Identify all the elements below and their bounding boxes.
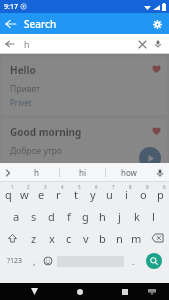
staticText: x <box>49 231 55 246</box>
button[interactable]: Clear <box>134 36 150 52</box>
button[interactable]: Settings <box>148 15 166 33</box>
button[interactable]: Recents <box>111 283 138 300</box>
button[interactable]: g <box>77 205 94 227</box>
staticText: t <box>74 187 78 202</box>
staticText: h <box>34 167 39 178</box>
button[interactable]: w <box>16 183 33 205</box>
button[interactable]: Good morning <box>2 119 167 163</box>
button[interactable]: j <box>111 205 128 227</box>
button[interactable]: y <box>84 183 101 205</box>
button[interactable]: u <box>101 183 118 205</box>
staticText: 9:17 <box>4 2 18 12</box>
staticText: y <box>90 187 96 202</box>
staticText: 2 <box>27 184 30 190</box>
staticText: f <box>67 209 71 224</box>
staticText: d <box>48 209 55 224</box>
button[interactable]: Voice search <box>150 36 166 52</box>
button[interactable]: d <box>43 205 60 227</box>
button[interactable]: x <box>43 227 60 249</box>
button[interactable]: q <box>0 183 16 205</box>
button[interactable]: b <box>94 227 111 249</box>
button[interactable]: i <box>118 183 135 205</box>
button[interactable]: ?123 <box>2 249 28 273</box>
button[interactable]: Hide keyboard <box>138 283 165 300</box>
button[interactable]: p <box>152 183 169 205</box>
button[interactable]: z <box>25 227 43 249</box>
staticText: h <box>24 38 30 50</box>
button[interactable]: Back <box>21 283 48 300</box>
button[interactable]: hi <box>60 163 105 182</box>
button[interactable]: r <box>50 183 67 205</box>
staticText: Доброе утро <box>10 145 62 156</box>
staticText: i <box>125 187 128 202</box>
staticText: 9 <box>146 184 149 190</box>
staticText: 6 <box>95 184 98 190</box>
button[interactable]: Home <box>66 283 93 300</box>
button[interactable]: Hello <box>2 57 167 115</box>
staticText: Privet <box>10 97 32 108</box>
staticText: hi <box>79 167 87 178</box>
staticText: 3 <box>44 184 47 190</box>
staticText: r <box>56 187 61 202</box>
staticText: n <box>116 231 123 246</box>
button[interactable]: Period <box>126 249 140 273</box>
staticText: v <box>83 231 89 246</box>
staticText: Hello <box>10 63 36 77</box>
button[interactable]: Play <box>139 147 161 163</box>
button[interactable]: n <box>111 227 128 249</box>
button[interactable]: o <box>135 183 152 205</box>
staticText: . <box>132 255 135 267</box>
staticText: 7 <box>112 184 115 190</box>
staticText: ?123 <box>7 256 23 266</box>
button[interactable]: Emoji <box>40 249 55 273</box>
staticText: h <box>99 209 106 224</box>
staticText: u <box>106 187 113 202</box>
staticText: j <box>118 209 121 224</box>
button[interactable]: Back <box>2 36 18 52</box>
button[interactable]: Back <box>0 34 169 54</box>
button[interactable]: a <box>7 205 25 227</box>
button[interactable]: t <box>67 183 84 205</box>
button[interactable]: f <box>60 205 77 227</box>
button[interactable]: Backspace <box>145 227 169 249</box>
button[interactable]: c <box>60 227 77 249</box>
button[interactable]: h <box>14 163 59 182</box>
staticText: g <box>82 209 89 224</box>
button[interactable]: Voice input <box>153 166 167 180</box>
button[interactable]: e <box>33 183 50 205</box>
staticText: , <box>33 255 36 267</box>
staticText: Привет <box>10 83 41 95</box>
staticText: 1 <box>11 184 14 190</box>
staticText: a <box>13 209 20 224</box>
staticText: 5 <box>78 184 81 190</box>
button[interactable]: Favorite <box>149 61 163 75</box>
button[interactable]: m <box>128 227 145 249</box>
button[interactable]: Favorite <box>149 123 163 137</box>
button[interactable]: l <box>145 205 162 227</box>
button[interactable]: s <box>25 205 43 227</box>
staticText: l <box>152 209 155 224</box>
staticText: 8 <box>129 184 132 190</box>
button[interactable]: how <box>106 163 151 182</box>
button[interactable]: v <box>77 227 94 249</box>
staticText: z <box>31 231 37 246</box>
staticText: w <box>20 187 29 202</box>
staticText: 0 <box>163 184 166 190</box>
button[interactable]: h <box>94 205 111 227</box>
staticText: Good morning <box>10 125 82 139</box>
button[interactable]: More suggestions <box>1 166 15 180</box>
button[interactable]: Comma <box>28 249 40 273</box>
staticText: b <box>99 231 106 246</box>
button[interactable]: Back <box>2 15 20 33</box>
staticText: m <box>131 231 142 246</box>
staticText: k <box>134 209 140 224</box>
button[interactable]: k <box>128 205 145 227</box>
button[interactable]: Shift <box>0 227 25 249</box>
staticText: e <box>38 187 45 202</box>
staticText: p <box>157 187 164 202</box>
staticText: q <box>5 187 12 202</box>
staticText: o <box>140 187 147 202</box>
staticText: Search <box>24 17 57 31</box>
button[interactable]: Search <box>140 249 167 273</box>
